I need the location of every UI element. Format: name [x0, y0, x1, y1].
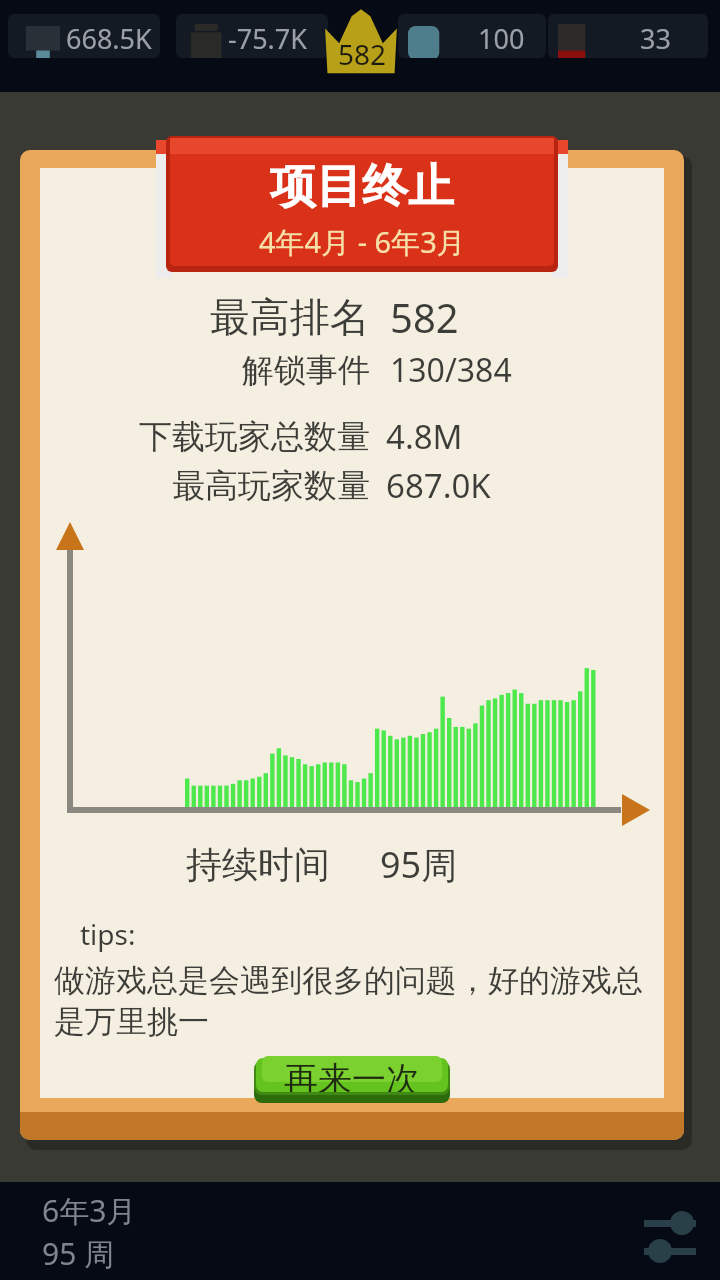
staticText: tips: — [80, 915, 136, 953]
staticText: 582 — [390, 290, 459, 344]
staticText: -75.7K — [228, 20, 307, 57]
staticText: 582 — [334, 35, 390, 73]
staticText: 4.8M — [386, 414, 463, 459]
staticText: 130/384 — [390, 348, 512, 392]
staticText: 最高排名 — [210, 292, 370, 342]
staticText: 最高玩家数量 — [172, 465, 370, 507]
staticText: 687.0K — [386, 463, 491, 508]
button[interactable]: Settings — [640, 1204, 700, 1260]
staticText: 95周 — [380, 840, 458, 889]
staticText: 再来一次 — [284, 1058, 420, 1092]
button[interactable]: Stat — [8, 14, 160, 58]
staticText: 解锁事件 — [242, 350, 370, 390]
button[interactable]: 再来一次 — [254, 1064, 450, 1098]
staticText: 33 — [640, 20, 671, 57]
button[interactable]: Stat — [548, 14, 708, 58]
staticText: 6年3月 — [42, 1190, 137, 1231]
button[interactable]: Stat — [176, 14, 328, 58]
staticText: 668.5K — [66, 20, 152, 57]
staticText: 持续时间 — [186, 842, 330, 887]
staticText: 100 — [478, 20, 525, 57]
staticText: 项目终止 — [270, 158, 454, 216]
staticText: 4年4月 - 6年3月 — [259, 222, 466, 262]
staticText: 做游戏总是会遇到很多的问题，好的游戏总是万里挑一 — [54, 961, 654, 1042]
staticText: 95 周 — [42, 1233, 115, 1274]
button[interactable]: Stat — [398, 14, 546, 58]
staticText: 下载玩家总数量 — [139, 416, 370, 458]
